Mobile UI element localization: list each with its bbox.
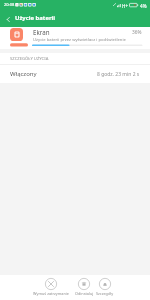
staticText: Użycie baterii przez wyświetlacz i podśw… bbox=[33, 37, 126, 43]
staticText: Wymuś zatrzymanie bbox=[33, 291, 69, 296]
button[interactable]: Włączony bbox=[0, 65, 150, 83]
staticText: Użycie baterii bbox=[15, 14, 56, 22]
button[interactable]: Back bbox=[1, 12, 15, 26]
staticText: 4% bbox=[140, 3, 147, 9]
button[interactable]: Wymuś zatrzymanie bbox=[33, 278, 69, 296]
staticText: Ekran bbox=[33, 28, 50, 36]
staticText: Włączony bbox=[10, 70, 37, 78]
button[interactable]: Szczegóły bbox=[87, 278, 123, 296]
staticText: 20:08 bbox=[4, 2, 15, 7]
staticText: 36% bbox=[132, 29, 142, 36]
staticText: Odinstaluj bbox=[75, 291, 94, 296]
staticText: SZCZEGÓŁY UŻYCIA bbox=[10, 56, 49, 62]
staticText: Szczegóły bbox=[96, 291, 114, 296]
button[interactable]: Ekran bbox=[0, 27, 150, 49]
staticText: 8 godz. 23 min 2 s bbox=[97, 71, 140, 78]
button[interactable]: Odinstaluj bbox=[66, 278, 102, 296]
staticText: H+ bbox=[122, 3, 129, 9]
